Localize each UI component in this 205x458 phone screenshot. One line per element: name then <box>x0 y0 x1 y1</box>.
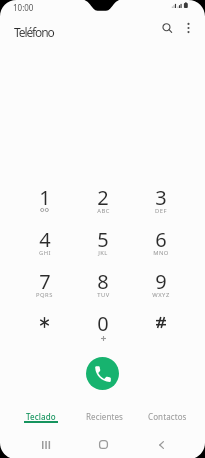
button[interactable]: 6 <box>132 226 190 268</box>
staticText: 3 <box>155 184 167 211</box>
staticText: MNO <box>153 249 169 257</box>
button[interactable] <box>15 310 74 352</box>
button[interactable]: More options <box>175 15 201 41</box>
staticText: 5 <box>97 226 109 253</box>
button[interactable]: 4 <box>15 226 74 268</box>
staticText: 4 <box>39 226 51 253</box>
staticText: JKL <box>98 249 108 257</box>
staticText: 10:00 <box>13 2 34 13</box>
staticText: 9 <box>155 268 167 295</box>
staticText: Recientes <box>86 411 123 422</box>
button[interactable]: Contactos <box>138 405 196 427</box>
button[interactable]: Recent apps <box>32 430 61 458</box>
button[interactable]: Call <box>86 357 119 390</box>
staticText: ABC <box>97 207 110 215</box>
button[interactable]: 3 <box>132 184 190 226</box>
staticText: 2 <box>97 184 109 211</box>
button[interactable]: Home <box>89 430 118 458</box>
button[interactable]: 0 <box>74 310 132 352</box>
staticText: GHI <box>39 249 51 257</box>
staticText: Contactos <box>148 411 187 422</box>
button[interactable]: Back <box>147 430 176 458</box>
staticText: 6 <box>155 226 167 253</box>
button[interactable]: 8 <box>74 268 132 310</box>
button[interactable]: 1 <box>15 184 74 226</box>
button[interactable]: 5 <box>74 226 132 268</box>
staticText: Teclado <box>26 411 56 422</box>
button[interactable]: Search <box>154 15 180 41</box>
button[interactable]: 2 <box>74 184 132 226</box>
staticText: PQRS <box>36 291 53 299</box>
staticText: DEF <box>155 207 167 215</box>
staticText: 0 <box>97 310 109 337</box>
button[interactable] <box>132 310 190 352</box>
button[interactable]: Teclado <box>12 405 70 427</box>
staticText: 8 <box>97 268 109 295</box>
button[interactable]: 9 <box>132 268 190 310</box>
button[interactable]: 7 <box>15 268 74 310</box>
staticText: TUV <box>97 291 110 299</box>
staticText: Teléfono <box>14 24 54 40</box>
staticText: 1 <box>39 184 51 211</box>
staticText: WXYZ <box>152 291 170 299</box>
button[interactable]: Recientes <box>75 405 133 427</box>
staticText: 7 <box>39 268 51 295</box>
